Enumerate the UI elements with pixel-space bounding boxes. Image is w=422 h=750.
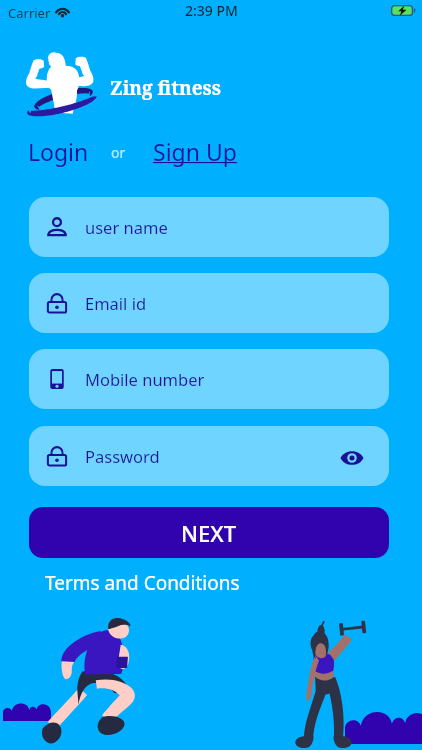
staticText: Mobile number [85,368,205,390]
staticText: Email id [85,292,147,314]
button[interactable]: NEXT [29,507,389,558]
button[interactable]: Sign Up [153,136,237,167]
staticText: Password [85,445,160,467]
staticText: Zing fitness [110,75,221,101]
staticText: 2:39 PM [185,1,238,20]
staticText: Carrier [8,4,51,22]
staticText: or [111,143,126,162]
button[interactable]: Terms and Conditions [45,570,240,596]
button[interactable]: Password [29,426,389,486]
staticText: user name [85,216,168,238]
button[interactable]: Email id [29,273,389,333]
button[interactable]: Show password [336,442,368,474]
button[interactable]: user name [29,197,389,257]
button[interactable]: Login [28,136,89,167]
button[interactable]: Mobile number [29,349,389,409]
staticText: NEXT [181,518,237,548]
